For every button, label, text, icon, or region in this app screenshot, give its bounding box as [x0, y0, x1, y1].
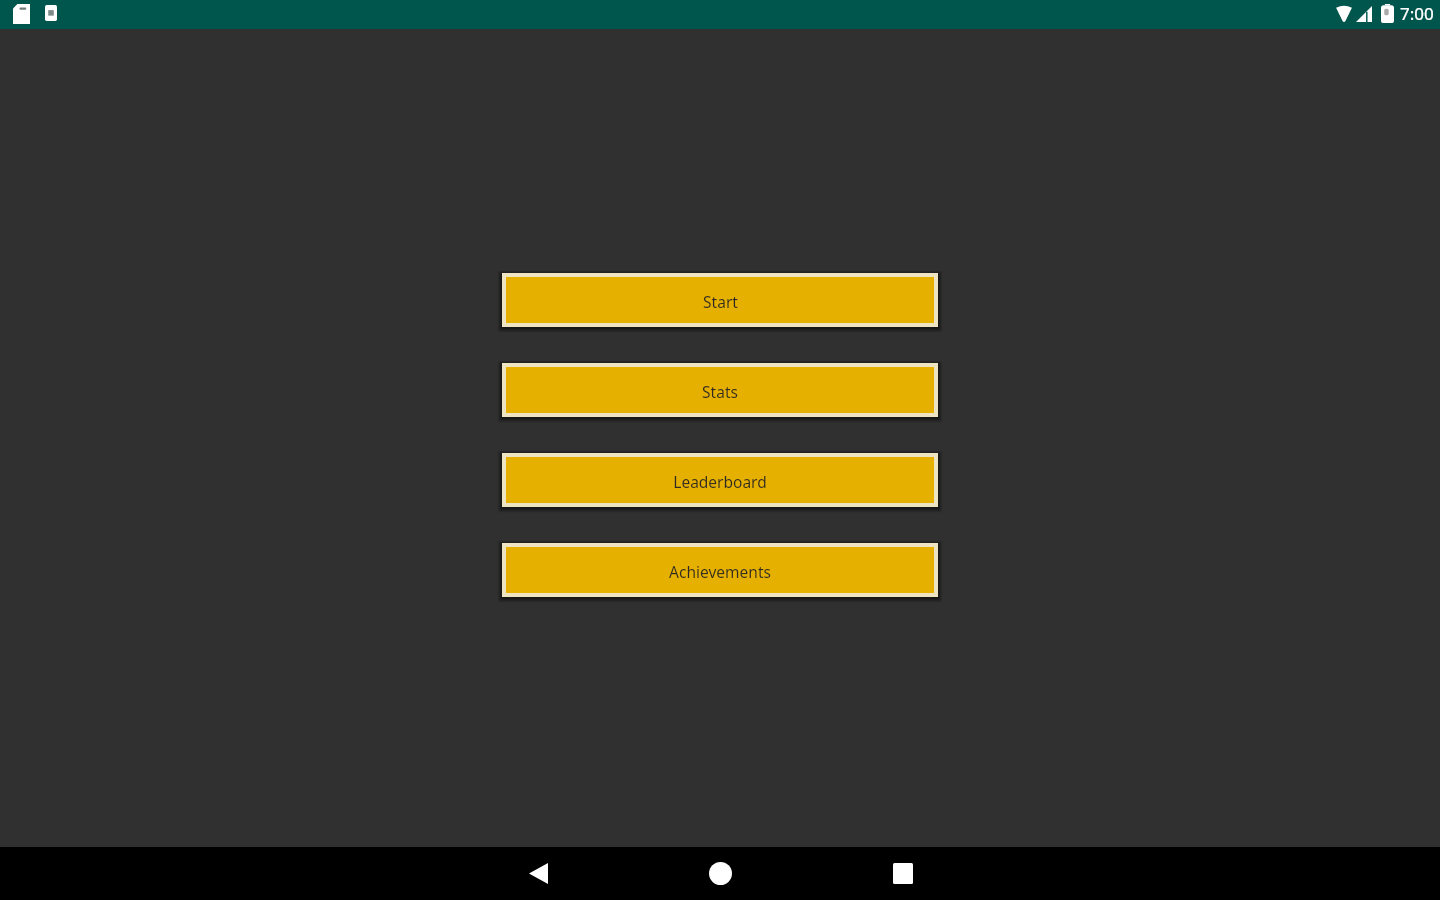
button[interactable]: Leaderboard — [506, 457, 934, 503]
button[interactable]: Back — [514, 847, 562, 900]
button[interactable]: Home — [696, 847, 744, 900]
staticText: Stats — [702, 381, 738, 402]
button[interactable]: Recent apps — [879, 847, 927, 900]
button[interactable]: Stats — [506, 367, 934, 413]
staticText: Achievements — [669, 561, 771, 582]
button[interactable]: Achievements — [506, 547, 934, 593]
button[interactable]: Start — [506, 277, 934, 323]
staticText: 7:00 — [1400, 2, 1434, 25]
staticText: Start — [703, 291, 738, 312]
staticText: Leaderboard — [673, 471, 767, 492]
